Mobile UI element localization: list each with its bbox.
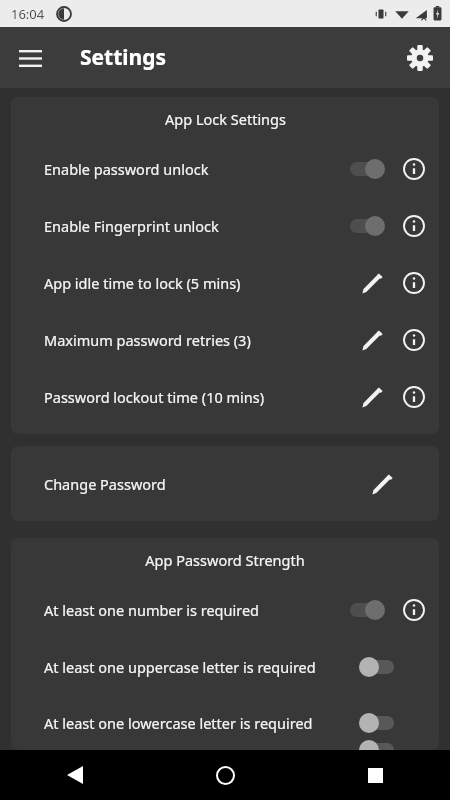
button[interactable]: Toggle off (357, 654, 397, 680)
button[interactable]: At least one number is required (11, 581, 439, 638)
staticText: App idle time to lock (5 mins) (44, 273, 357, 293)
button[interactable]: Password lockout time (10 mins) (11, 368, 439, 425)
button[interactable]: More information (399, 268, 429, 298)
button[interactable]: Toggle on (347, 213, 387, 239)
button[interactable]: Recent apps (300, 750, 450, 800)
button[interactable]: Enable Fingerprint unlock (11, 197, 439, 254)
button[interactable]: At least one lowercase letter is require… (11, 695, 439, 750)
staticText: App Password Strength (145, 550, 305, 570)
staticText: Enable Fingerprint unlock (44, 216, 347, 236)
button[interactable]: Edit (357, 382, 387, 412)
staticText: At least one uppercase letter is require… (44, 657, 357, 677)
button[interactable]: Enable password unlock (11, 140, 439, 197)
button[interactable]: More information (399, 211, 429, 241)
staticText: Change Password (44, 474, 367, 494)
staticText: At least one number is required (44, 600, 347, 620)
button[interactable]: More information (399, 382, 429, 412)
staticText: Maximum password retries (3) (44, 330, 357, 350)
button[interactable]: Settings (398, 36, 442, 80)
button[interactable]: Change Password (11, 446, 439, 521)
button[interactable]: At least one uppercase letter is require… (11, 638, 439, 695)
staticText: Settings (80, 43, 167, 72)
button[interactable]: Edit (357, 268, 387, 298)
button[interactable]: Edit (357, 325, 387, 355)
button[interactable]: Toggle off (357, 710, 397, 736)
button[interactable]: Home (150, 750, 300, 800)
button[interactable]: App idle time to lock (5 mins) (11, 254, 439, 311)
button[interactable]: Maximum password retries (3) (11, 311, 439, 368)
button[interactable]: More information (399, 154, 429, 184)
button[interactable]: Edit (367, 469, 397, 499)
staticText: Password lockout time (10 mins) (44, 387, 357, 407)
staticText: Enable password unlock (44, 159, 347, 179)
staticText: At least one lowercase letter is require… (44, 713, 357, 733)
button[interactable]: Open navigation menu (10, 38, 50, 78)
button[interactable]: Toggle on (347, 597, 387, 623)
staticText: 16:04 (11, 5, 45, 23)
button[interactable]: More information (399, 325, 429, 355)
button[interactable]: Toggle on (347, 156, 387, 182)
staticText: App Lock Settings (165, 109, 286, 129)
button[interactable]: More information (399, 595, 429, 625)
button[interactable]: Back (0, 750, 150, 800)
